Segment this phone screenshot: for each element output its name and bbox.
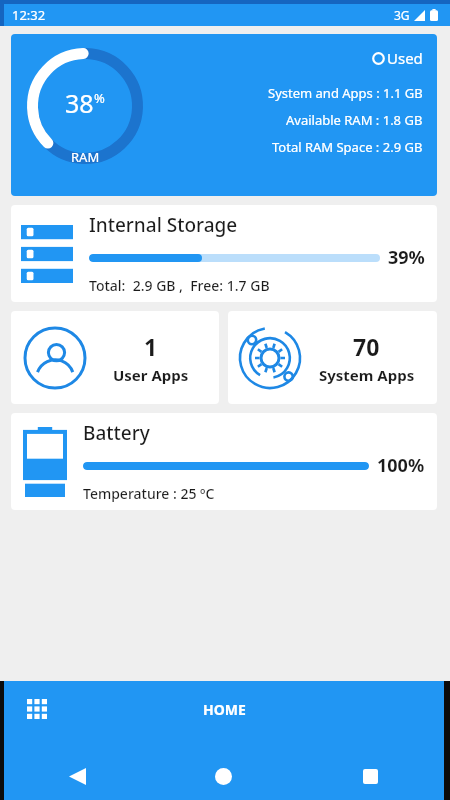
staticText: System Apps [319,365,415,385]
button[interactable]: Apps grid [22,694,52,724]
staticText: Total: 2.9 GB , Free: 1.7 GB [89,276,270,295]
button[interactable]: 38 [11,34,437,196]
button[interactable]: Back [4,752,150,800]
other: User apps [23,326,87,390]
staticText: User Apps [113,365,189,385]
button[interactable]: User apps [11,311,219,404]
staticText: Used [387,48,423,68]
staticText: % [94,89,105,107]
button[interactable]: Home [150,752,297,800]
staticText: 12:32 [12,6,46,24]
staticText: Available RAM : 1.8 GB [286,111,423,129]
staticText: 38 [65,86,94,120]
staticText: Internal Storage [89,212,238,238]
other: System apps [238,326,302,390]
staticText: Battery [83,420,150,446]
staticText: System and Apps : 1.1 GB [268,84,423,102]
button[interactable]: System apps [228,311,437,404]
staticText: 3G [394,7,410,23]
staticText: RAM [71,148,100,166]
staticText: HOME [203,700,246,719]
staticText: 70 [353,331,380,362]
staticText: 1 [144,331,158,362]
button[interactable]: HOME [203,700,246,719]
button[interactable]: Recents [297,752,444,800]
staticText: Total RAM Space : 2.9 GB [272,138,423,156]
staticText: 100% [377,453,425,478]
button[interactable]: Internal Storage [11,205,437,302]
staticText: Temperature : 25 ºC [83,484,215,503]
staticText: 39% [388,245,425,270]
button[interactable]: Battery [11,413,437,510]
